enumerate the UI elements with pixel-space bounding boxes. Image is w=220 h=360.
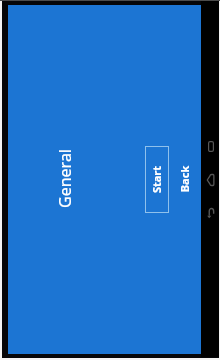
button[interactable]: Home [204,172,216,188]
staticText: Start [148,165,163,193]
button[interactable]: Recent apps [205,138,217,154]
button[interactable]: Start [145,146,169,213]
button[interactable]: Back [173,155,195,203]
staticText: General [54,149,76,208]
staticText: Back [176,165,191,192]
button[interactable]: Back [204,204,216,220]
